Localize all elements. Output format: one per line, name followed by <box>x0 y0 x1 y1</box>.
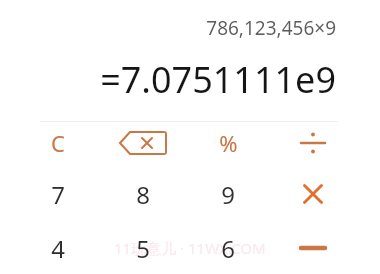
button[interactable]: Multiply <box>276 171 350 217</box>
staticText: 6 <box>221 232 235 265</box>
button[interactable]: 6 <box>191 225 265 271</box>
button[interactable]: Divide <box>276 120 350 166</box>
staticText: C <box>51 128 65 158</box>
staticText: 7 <box>51 178 65 211</box>
button[interactable]: 9 <box>191 171 265 217</box>
staticText: 9 <box>221 178 235 211</box>
button[interactable]: 7 <box>21 171 95 217</box>
staticText: 5 <box>136 232 150 265</box>
button[interactable]: C <box>21 120 95 166</box>
staticText: =7.0751111e9 <box>100 55 336 103</box>
button[interactable]: 8 <box>106 171 180 217</box>
staticText: % <box>219 128 238 158</box>
staticText: 786,123,456×9 <box>206 15 336 41</box>
staticText: 4 <box>51 232 65 265</box>
button[interactable]: % <box>191 120 265 166</box>
staticText: 11玩意儿 · 11WX.COM <box>114 238 266 258</box>
button[interactable]: Minus <box>276 225 350 271</box>
button[interactable]: 5 <box>106 225 180 271</box>
staticText: 8 <box>136 178 150 211</box>
button[interactable]: 4 <box>21 225 95 271</box>
button[interactable]: Backspace <box>106 120 180 166</box>
